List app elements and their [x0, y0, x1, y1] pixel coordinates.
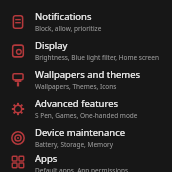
- other: Apps: [8, 152, 28, 172]
- staticText: Default apps, App permissions: [35, 166, 129, 172]
- staticText: S Pen, Games, One-handed mode: [35, 111, 138, 120]
- staticText: Wallpapers and themes: [35, 68, 141, 81]
- button[interactable]: Wallpapers and themes: [0, 65, 172, 94]
- button[interactable]: Notifications: [0, 7, 172, 36]
- button[interactable]: Display: [0, 36, 172, 65]
- staticText: Brightness, Blue light filter, Home scre…: [35, 53, 159, 62]
- other: Advanced features: [8, 99, 28, 119]
- other: Wallpapers and themes: [8, 70, 28, 90]
- staticText: Block, allow, prioritize: [35, 24, 102, 33]
- other: Device maintenance: [8, 128, 28, 148]
- staticText: Wallpapers, Themes, Icons: [35, 82, 117, 91]
- staticText: Device maintenance: [35, 126, 126, 139]
- staticText: Advanced features: [35, 97, 119, 110]
- other: Notifications: [8, 12, 28, 32]
- staticText: Display: [35, 39, 68, 52]
- button[interactable]: Apps: [0, 152, 172, 172]
- staticText: Battery, Storage, Memory: [35, 140, 114, 149]
- staticText: Apps: [35, 152, 58, 165]
- button[interactable]: Device maintenance: [0, 123, 172, 152]
- staticText: Notifications: [35, 10, 92, 23]
- other: Display: [8, 41, 28, 61]
- button[interactable]: Advanced features: [0, 94, 172, 123]
